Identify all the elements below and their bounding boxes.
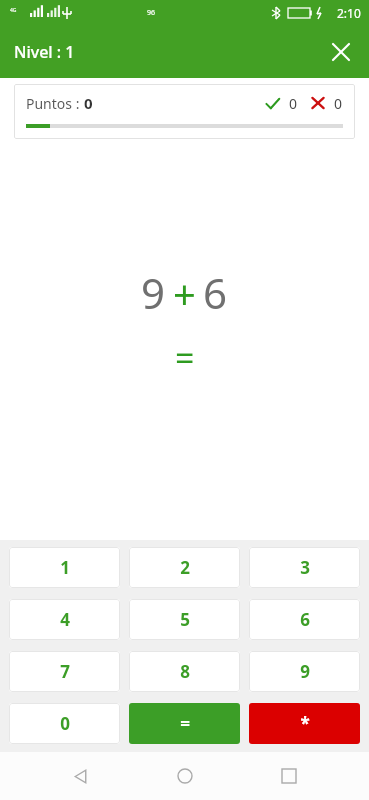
staticText: 1 xyxy=(60,556,70,579)
staticText: Puntos : xyxy=(26,94,84,113)
button[interactable]: 4 xyxy=(9,599,120,640)
button[interactable]: 3 xyxy=(249,547,360,588)
button[interactable]: 6 xyxy=(249,599,360,640)
button[interactable]: Close xyxy=(323,34,359,70)
button[interactable]: 5 xyxy=(129,599,240,640)
staticText: 0 xyxy=(289,94,298,113)
staticText: 0 xyxy=(334,94,343,113)
staticText: 0 xyxy=(60,712,70,735)
staticText: 0 xyxy=(84,93,93,113)
staticText: = xyxy=(175,335,195,381)
staticText: 7 xyxy=(60,660,70,683)
button[interactable]: Recent apps xyxy=(265,752,313,800)
staticText: 9 xyxy=(300,660,310,683)
staticText: 2 xyxy=(180,556,190,579)
staticText: 9 xyxy=(141,264,166,321)
staticText: 6 xyxy=(300,608,310,631)
button[interactable]: 9 xyxy=(249,651,360,692)
staticText: + xyxy=(173,266,196,320)
button[interactable]: = xyxy=(129,703,240,744)
button[interactable]: * xyxy=(249,703,360,744)
button[interactable]: 7 xyxy=(9,651,120,692)
staticText: 4G xyxy=(10,7,17,14)
button[interactable]: Back xyxy=(56,752,104,800)
button[interactable]: 1 xyxy=(9,547,120,588)
staticText: 8 xyxy=(180,660,190,683)
staticText: 5 xyxy=(180,608,190,631)
staticText: 4 xyxy=(60,608,70,631)
staticText: 3 xyxy=(300,556,310,579)
staticText: * xyxy=(300,712,310,735)
button[interactable]: 0 xyxy=(9,703,120,744)
button[interactable]: 2 xyxy=(129,547,240,588)
staticText: = xyxy=(180,712,190,735)
staticText: 2:10 xyxy=(337,5,361,21)
button[interactable]: Home xyxy=(161,752,209,800)
staticText: 96 xyxy=(147,8,156,18)
staticText: 6 xyxy=(203,264,228,321)
staticText: Nivel : 1 xyxy=(14,41,75,63)
button[interactable]: 8 xyxy=(129,651,240,692)
